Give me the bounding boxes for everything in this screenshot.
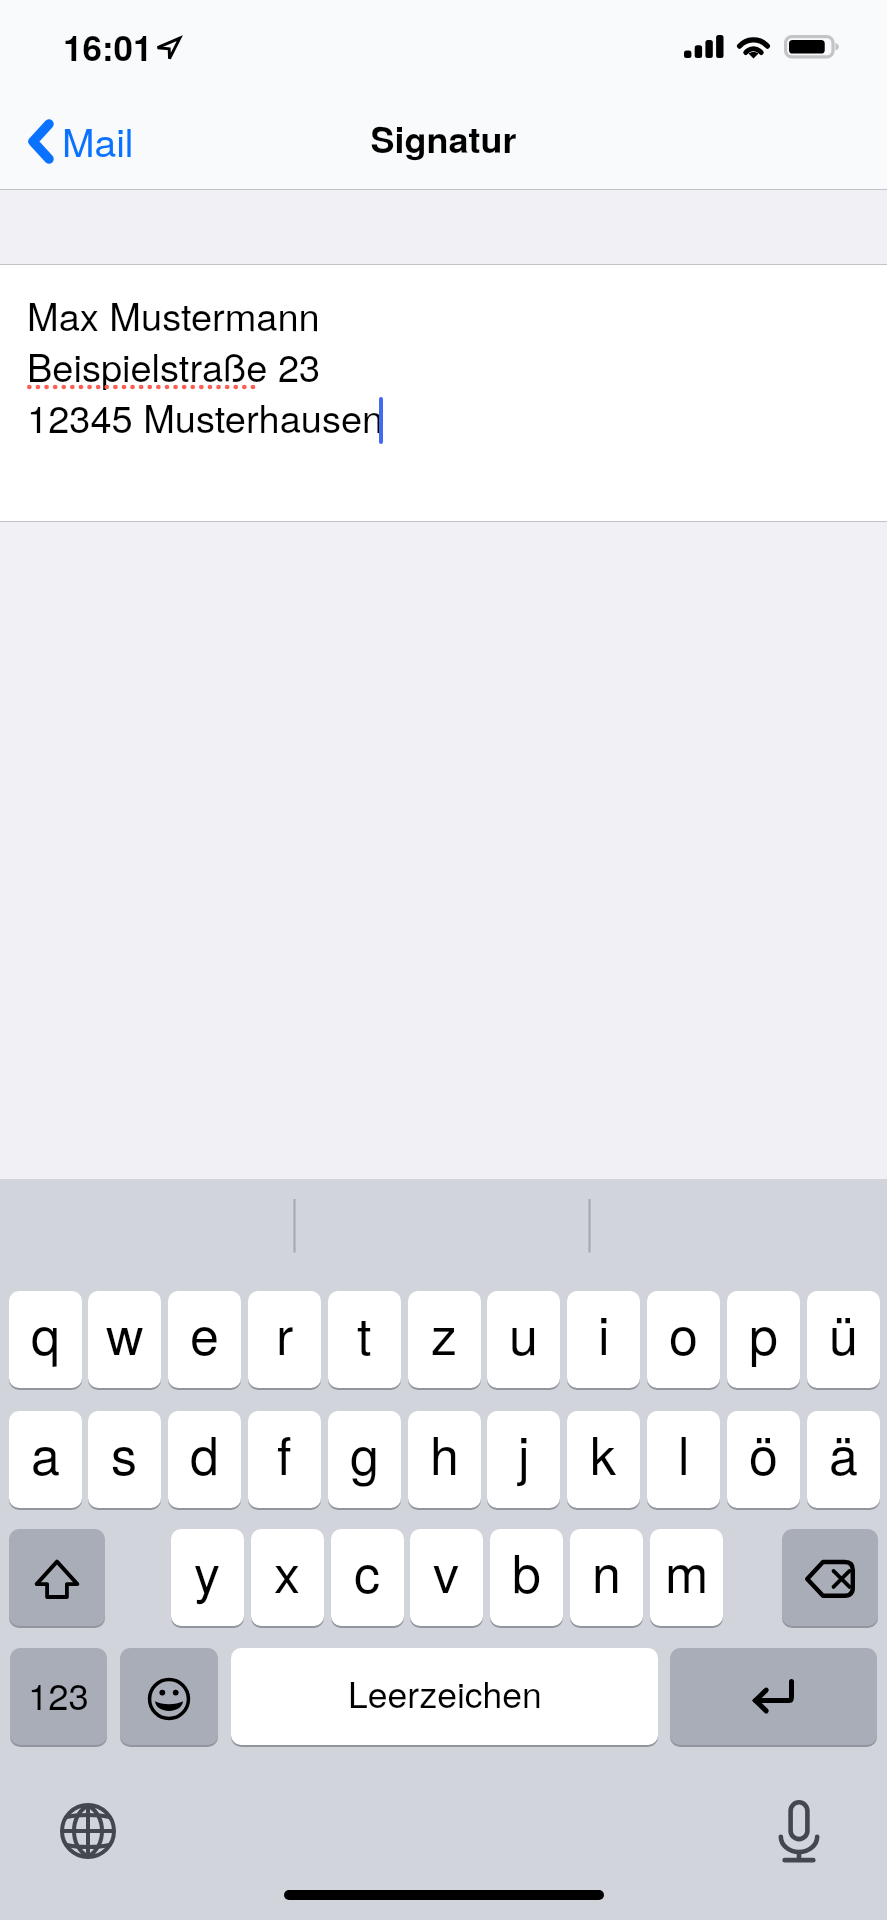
staticText: ü (829, 1295, 858, 1369)
staticText: o (669, 1295, 698, 1369)
button[interactable]: 123 (10, 1648, 107, 1745)
button[interactable]: i (567, 1291, 640, 1388)
staticText: i (598, 1295, 610, 1369)
staticText: m (665, 1533, 709, 1607)
staticText: s (111, 1415, 138, 1489)
button[interactable]: p (727, 1291, 800, 1388)
button[interactable]: Dictate (767, 1799, 831, 1863)
button[interactable]: m (650, 1529, 723, 1626)
staticText: y (194, 1533, 221, 1607)
staticText: 123 (28, 1668, 89, 1720)
staticText: ö (749, 1415, 778, 1489)
button[interactable]: c (331, 1529, 404, 1626)
staticText: t (357, 1295, 372, 1369)
staticText: Signatur (0, 112, 887, 164)
staticText: ä (829, 1415, 858, 1489)
staticText: w (106, 1295, 144, 1369)
staticText: d (190, 1415, 219, 1489)
staticText: j (518, 1415, 530, 1489)
button[interactable]: Shift (9, 1529, 105, 1626)
button[interactable]: j (487, 1411, 560, 1508)
button[interactable]: Emoji (120, 1648, 218, 1745)
staticText: g (350, 1415, 379, 1489)
button[interactable]: ä (807, 1411, 880, 1508)
button[interactable]: x (251, 1529, 324, 1626)
staticText: l (678, 1415, 690, 1489)
staticText: k (590, 1415, 617, 1489)
button[interactable]: t (328, 1291, 401, 1388)
button[interactable]: Backspace (782, 1529, 878, 1626)
button[interactable]: k (567, 1411, 640, 1508)
staticText: b (512, 1533, 541, 1607)
staticText: Mail (62, 112, 134, 168)
button[interactable]: Return (670, 1648, 877, 1745)
staticText: Beispielstraße 23 (27, 338, 321, 392)
staticText: u (509, 1295, 538, 1369)
staticText: v (433, 1533, 460, 1607)
staticText: e (190, 1295, 219, 1369)
button[interactable]: h (408, 1411, 481, 1508)
button[interactable]: b (490, 1529, 563, 1626)
button[interactable]: d (168, 1411, 241, 1508)
button[interactable]: z (408, 1291, 481, 1388)
button[interactable]: Change keyboard (56, 1799, 120, 1863)
button[interactable]: o (647, 1291, 720, 1388)
staticText: 16:01 (63, 22, 153, 72)
button[interactable]: s (88, 1411, 161, 1508)
button[interactable]: e (168, 1291, 241, 1388)
button[interactable]: q (9, 1291, 82, 1388)
staticText: x (274, 1533, 301, 1607)
button[interactable]: Leerzeichen (231, 1648, 658, 1745)
staticText: h (430, 1415, 459, 1489)
button[interactable]: l (647, 1411, 720, 1508)
button[interactable]: f (248, 1411, 321, 1508)
button[interactable]: u (487, 1291, 560, 1388)
button[interactable]: r (248, 1291, 321, 1388)
staticText: c (354, 1533, 381, 1607)
button[interactable]: ü (807, 1291, 880, 1388)
button[interactable]: n (570, 1529, 643, 1626)
button[interactable]: Mail (0, 103, 158, 179)
button[interactable]: g (328, 1411, 401, 1508)
button[interactable]: a (9, 1411, 82, 1508)
staticText: q (31, 1295, 60, 1369)
staticText: z (431, 1295, 458, 1369)
staticText: p (749, 1295, 778, 1369)
staticText: n (592, 1533, 621, 1607)
staticText: r (276, 1295, 294, 1369)
staticText: a (31, 1415, 60, 1489)
button[interactable]: v (410, 1529, 483, 1626)
staticText: f (277, 1415, 292, 1489)
staticText: Leerzeichen (348, 1667, 542, 1718)
button[interactable]: w (88, 1291, 161, 1388)
staticText: 12345 Musterhausen (27, 389, 384, 443)
button[interactable]: ö (727, 1411, 800, 1508)
button[interactable]: y (171, 1529, 244, 1626)
staticText: Max Mustermann (27, 287, 320, 341)
